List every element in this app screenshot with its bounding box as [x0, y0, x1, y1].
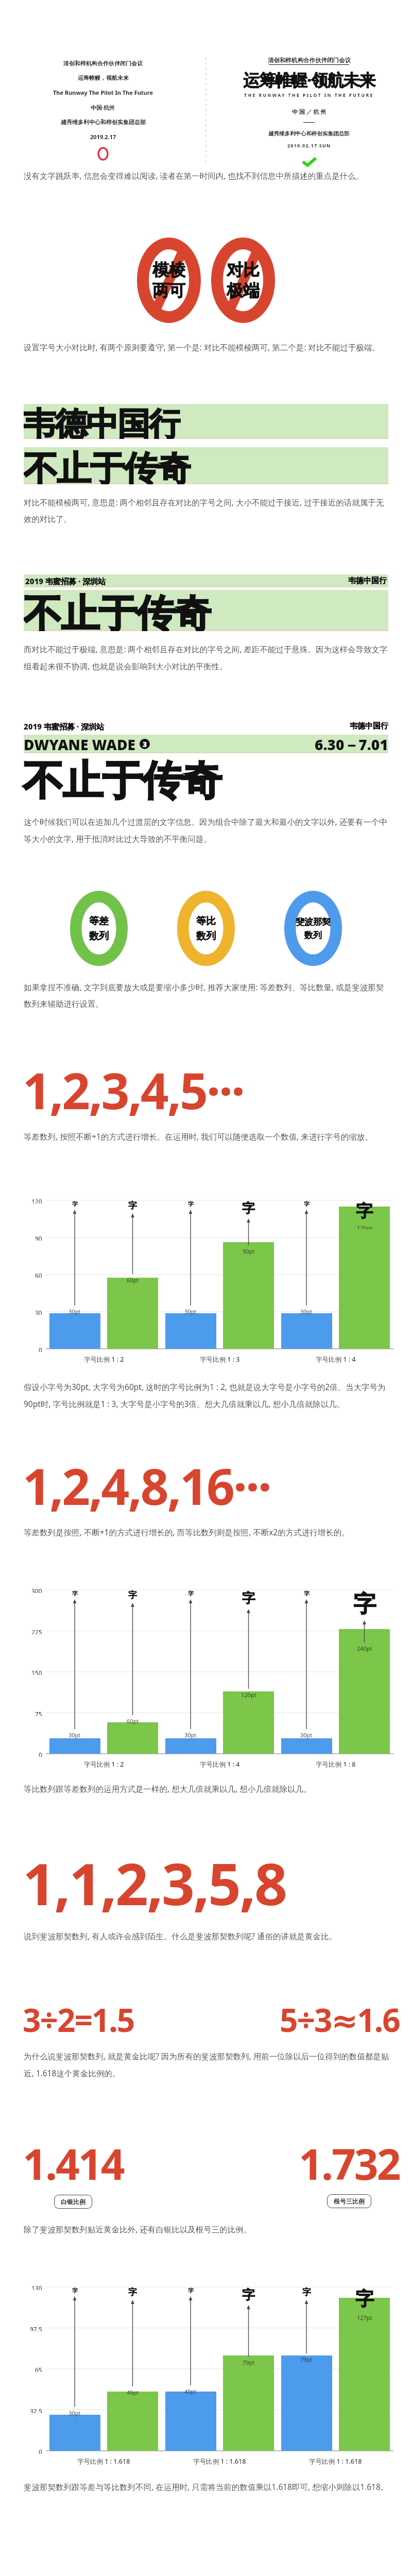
staticText: 0	[39, 1751, 42, 1757]
staticText: 49pt	[127, 2388, 139, 2396]
staticText: 30pt	[300, 1731, 313, 1739]
staticText: 字号比例 1 : 2	[84, 1355, 124, 1364]
staticText: 120	[31, 1197, 42, 1204]
button[interactable]: 等比数列	[177, 891, 235, 966]
staticText: 字	[188, 1590, 194, 1597]
staticText: 2019 韦蜜招募 · 深圳站	[24, 721, 105, 732]
staticText: 对比	[227, 260, 260, 280]
staticText: 设置字号大小对比时, 有两个原则要遵守, 第一个是: 对比不能模棱两可, 第二个…	[24, 342, 390, 352]
staticText: 根号三比例	[334, 2197, 365, 2205]
staticText: 斐波那契数列跟等差与等比数列不同, 在运用时, 只需将当前的数值乘以1.618即…	[24, 2481, 390, 2492]
staticText: 等差	[89, 915, 109, 927]
staticText: 1,2,4,8,16···	[23, 1452, 400, 1519]
staticText: 字	[302, 2287, 311, 2298]
staticText: 79pt	[300, 2355, 313, 2363]
staticText: 120pt	[357, 1224, 372, 1229]
staticText: 130	[31, 2284, 42, 2290]
staticText: 127pt	[357, 2314, 372, 2321]
staticText: 为什么说斐波那契数列, 就是黄金比呢? 因为所有的斐波那契数列, 用前一位除以后…	[24, 2050, 390, 2079]
staticText: 韦德中国行	[24, 404, 181, 439]
staticText: 等差数列, 按照不断+1的方式进行增长。在运用时, 我们可以随便选取一个数值, …	[24, 1131, 390, 1142]
staticText: 字	[128, 1200, 137, 1211]
staticText: 字号比例 1 : 4	[316, 1355, 356, 1364]
staticText: 不止于传奇	[23, 755, 389, 807]
staticText: 韦德中国行	[348, 576, 387, 586]
staticText: DWYANE WADE	[24, 735, 140, 753]
button[interactable]: 等差数列	[70, 891, 128, 966]
staticText: 字	[242, 1590, 255, 1607]
staticText: 32.5	[30, 2407, 42, 2413]
staticText: 字	[356, 1200, 373, 1222]
staticText: 30pt	[68, 1308, 81, 1315]
staticText: 79pt	[243, 2359, 255, 2366]
staticText: 60	[35, 1272, 42, 1278]
staticText: 字号比例 1 : 3	[200, 1355, 240, 1364]
staticText: 60pt	[127, 1717, 139, 1725]
button[interactable]: 禁止模棱两可	[137, 238, 201, 323]
staticText: 等差数列是按照, 不断+1的方式进行增长的, 而等比数列则是按照, 不断x2的方…	[24, 1527, 390, 1537]
staticText: 字号比例 1 : 8	[316, 1760, 356, 1769]
staticText: 字	[304, 1200, 310, 1208]
staticText: 两可	[152, 280, 185, 301]
staticText: 75	[35, 1710, 42, 1716]
button[interactable]: 禁止对比极端	[211, 238, 275, 323]
staticText: 越秀维多利中心和梓创实集团总部	[61, 118, 146, 126]
staticText: 等比	[196, 915, 216, 927]
staticText: 字	[353, 1590, 376, 1618]
staticText: 白银比例	[61, 2198, 85, 2206]
staticText: 说到斐波那契数列, 有人或许会感到陌生。什么是斐波那契数列呢? 通俗的讲就是黄金…	[24, 1930, 390, 1941]
button[interactable]: 斐波那契数列	[284, 891, 342, 966]
staticText: 字	[72, 2287, 78, 2294]
staticText: 2019.02.17 SUN	[287, 142, 331, 148]
staticText: 不止于传奇	[24, 590, 212, 631]
staticText: 30pt	[68, 1731, 81, 1739]
staticText: 字	[72, 1590, 78, 1597]
staticText: 等比数列跟等差数列的运用方式是一样的, 想大几倍就乘以几, 想小几倍就除以几。	[24, 1783, 390, 1794]
staticText: 运筹帷幄·领航未来	[243, 69, 375, 91]
staticText: 150	[31, 1669, 42, 1675]
staticText: 对比不能模棱两可, 意思是: 两个相邻且存在对比的字号之间, 大小不能过于接近,…	[24, 497, 390, 524]
staticText: 这个时候我们可以在追加几个过渡层的文字信息。因为组合中除了最大和最小的文字以外,…	[24, 816, 390, 844]
staticText: 没有文字跳跃率, 信息会变得难以阅读, 读者在第一时间内, 也找不到信息中所描述…	[24, 170, 390, 181]
staticText: 不止于传奇	[24, 447, 191, 484]
staticText: The Runway The Pilot In The Future	[53, 89, 153, 96]
staticText: 240pt	[357, 1645, 372, 1652]
staticText: 中 国 ／ 杭 州	[292, 108, 327, 115]
staticText: 60pt	[127, 1276, 139, 1284]
staticText: 运筹帷幄，领航未来	[78, 74, 129, 81]
staticText: 字	[242, 1200, 255, 1216]
staticText: 字号比例 1 : 1.618	[193, 2457, 246, 2466]
staticText: 6.30－7.01	[315, 735, 388, 753]
staticText: 2019 韦蜜招募 · 深圳站	[25, 576, 106, 586]
staticText: 97.5	[30, 2325, 42, 2331]
staticText: 中国·杭州	[91, 104, 115, 111]
staticText: 越秀维多利中心和梓创实集团总部	[268, 130, 350, 137]
staticText: 30pt	[184, 1731, 197, 1739]
staticText: 数列	[304, 930, 322, 941]
staticText: 30pt	[68, 2409, 81, 2417]
staticText: 字	[355, 2287, 374, 2310]
staticText: 字	[304, 1590, 310, 1597]
staticText: 清创和梓机构合作伙伴闭门会议	[63, 60, 143, 67]
staticText: 字	[128, 2287, 137, 2298]
staticText: 字	[242, 2287, 255, 2303]
staticText: 90pt	[243, 1247, 255, 1255]
staticText: 0	[39, 2448, 42, 2454]
staticText: 1,2,3,4,5···	[23, 1056, 400, 1124]
staticText: 字号比例 1 : 1.618	[309, 2457, 362, 2466]
staticText: 字号比例 1 : 4	[200, 1760, 240, 1769]
staticText: 数列	[196, 930, 216, 942]
staticText: 除了斐波那契数列贴近黄金比外, 还有白银比以及根号三的比例。	[24, 2224, 390, 2234]
staticText: 字号比例 1 : 2	[84, 1760, 124, 1769]
staticText: 数列	[89, 930, 109, 942]
staticText: 斐波那契	[296, 917, 331, 927]
staticText: 而对比不能过于极端, 意思是: 两个相邻且存在对比的字号之间, 差距不能过于悬殊…	[24, 643, 390, 672]
staticText: 模棱	[152, 260, 185, 280]
staticText: 3	[143, 739, 147, 749]
staticText: 如果拿捏不准确, 文字到底要放大或是要缩小多少时, 推荐大家使用: 等差数列、等…	[24, 981, 390, 1009]
staticText: 0	[39, 1346, 42, 1352]
staticText: 120pt	[241, 1691, 256, 1699]
staticText: 1.414	[23, 2134, 124, 2192]
staticText: 字	[128, 1590, 137, 1601]
staticText: 49pt	[184, 2387, 197, 2395]
